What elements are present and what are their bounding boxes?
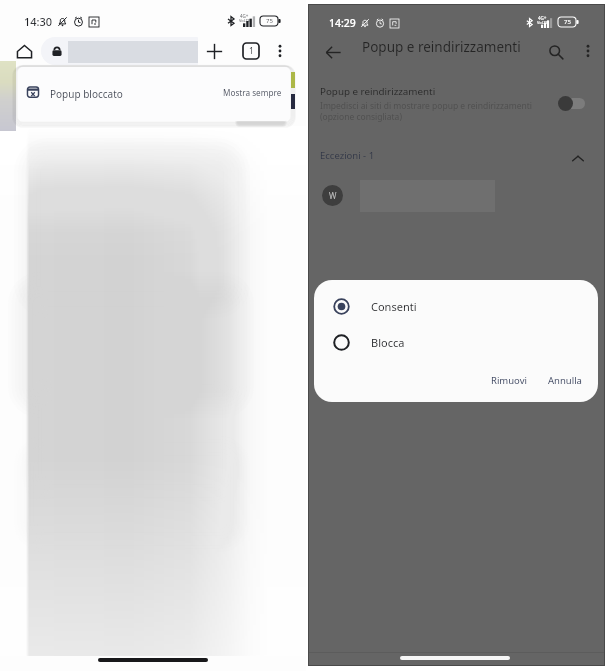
staticText: 4G+ <box>240 13 249 19</box>
button[interactable]: Blocca <box>314 324 598 360</box>
button[interactable]: Consenti <box>314 288 598 324</box>
staticText: Popup e reindirizzamenti <box>320 85 436 98</box>
staticText: Consenti <box>371 299 417 314</box>
button[interactable]: Search <box>542 38 570 66</box>
staticText: W <box>329 190 337 201</box>
button[interactable]: Popup toggle <box>558 94 590 112</box>
button[interactable]: W <box>309 171 604 221</box>
staticText: Blocca <box>371 335 405 350</box>
button[interactable]: More options <box>575 38 601 64</box>
staticText: VoLTE <box>239 18 251 23</box>
button[interactable]: Rimuovi <box>486 369 532 392</box>
staticText: Popup bloccato <box>50 87 123 101</box>
button[interactable]: Back <box>319 38 347 66</box>
button[interactable]: Home <box>14 41 34 61</box>
button[interactable]: Popup bloccato <box>18 67 290 121</box>
button[interactable] <box>41 37 198 65</box>
staticText: Popup e reindirizzamenti <box>362 38 521 56</box>
staticText: 75 <box>266 17 273 25</box>
staticText: 14:29 <box>329 16 356 30</box>
staticText: VoLTE <box>537 20 549 25</box>
staticText: Impedisci ai siti di mostrare popup e re… <box>320 100 533 122</box>
button[interactable]: Tabs <box>241 41 261 61</box>
staticText: Annulla <box>548 374 582 387</box>
button[interactable]: New tab <box>204 41 224 61</box>
staticText: 1 <box>249 45 254 57</box>
staticText: 4G+ <box>538 15 547 21</box>
staticText: Rimuovi <box>491 374 527 387</box>
staticText: Eccezioni - 1 <box>320 149 375 162</box>
staticText: 75 <box>564 18 571 26</box>
staticText: Mostra sempre <box>223 87 282 98</box>
staticText: 14:30 <box>24 14 53 29</box>
button[interactable]: Popup e reindirizzamenti <box>309 81 604 127</box>
button[interactable]: Eccezioni - 1 <box>309 145 604 171</box>
button[interactable]: More options <box>270 41 290 61</box>
button[interactable]: Annulla <box>543 369 587 392</box>
